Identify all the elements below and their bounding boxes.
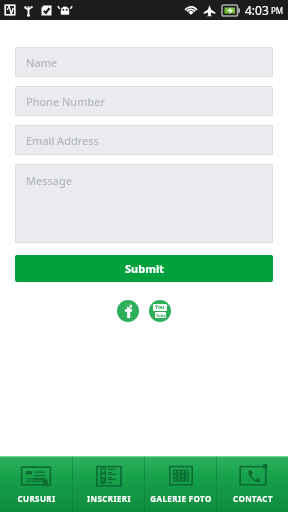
button[interactable]: CURSURI — [0, 456, 72, 512]
button[interactable]: YouTube — [149, 300, 171, 322]
staticText: 4:03 — [245, 2, 269, 18]
button[interactable]: GALERIE FOTO — [145, 456, 216, 512]
button[interactable]: CONTACT — [217, 456, 288, 512]
staticText: GALERIE FOTO — [150, 493, 212, 504]
button[interactable]: Name — [15, 47, 273, 77]
button[interactable]: Email Address — [15, 125, 273, 155]
button[interactable]: INSCRIERI — [73, 456, 144, 512]
staticText: CURSURI — [17, 493, 56, 504]
button[interactable]: Phone Number — [15, 86, 273, 116]
staticText: INSCRIERI — [87, 493, 131, 504]
staticText: Name — [26, 55, 58, 70]
staticText: You — [155, 304, 165, 311]
staticText: Email Address — [26, 133, 99, 148]
staticText: Tube — [156, 313, 166, 318]
staticText: Phone Number — [26, 94, 105, 109]
staticText: Message — [26, 173, 72, 188]
button[interactable]: Message — [15, 164, 273, 243]
staticText: CONTACT — [233, 493, 273, 504]
staticText: PM — [271, 5, 284, 16]
button[interactable]: Submit — [15, 255, 273, 282]
button[interactable]: Facebook — [117, 300, 139, 322]
staticText: Submit — [125, 261, 164, 276]
